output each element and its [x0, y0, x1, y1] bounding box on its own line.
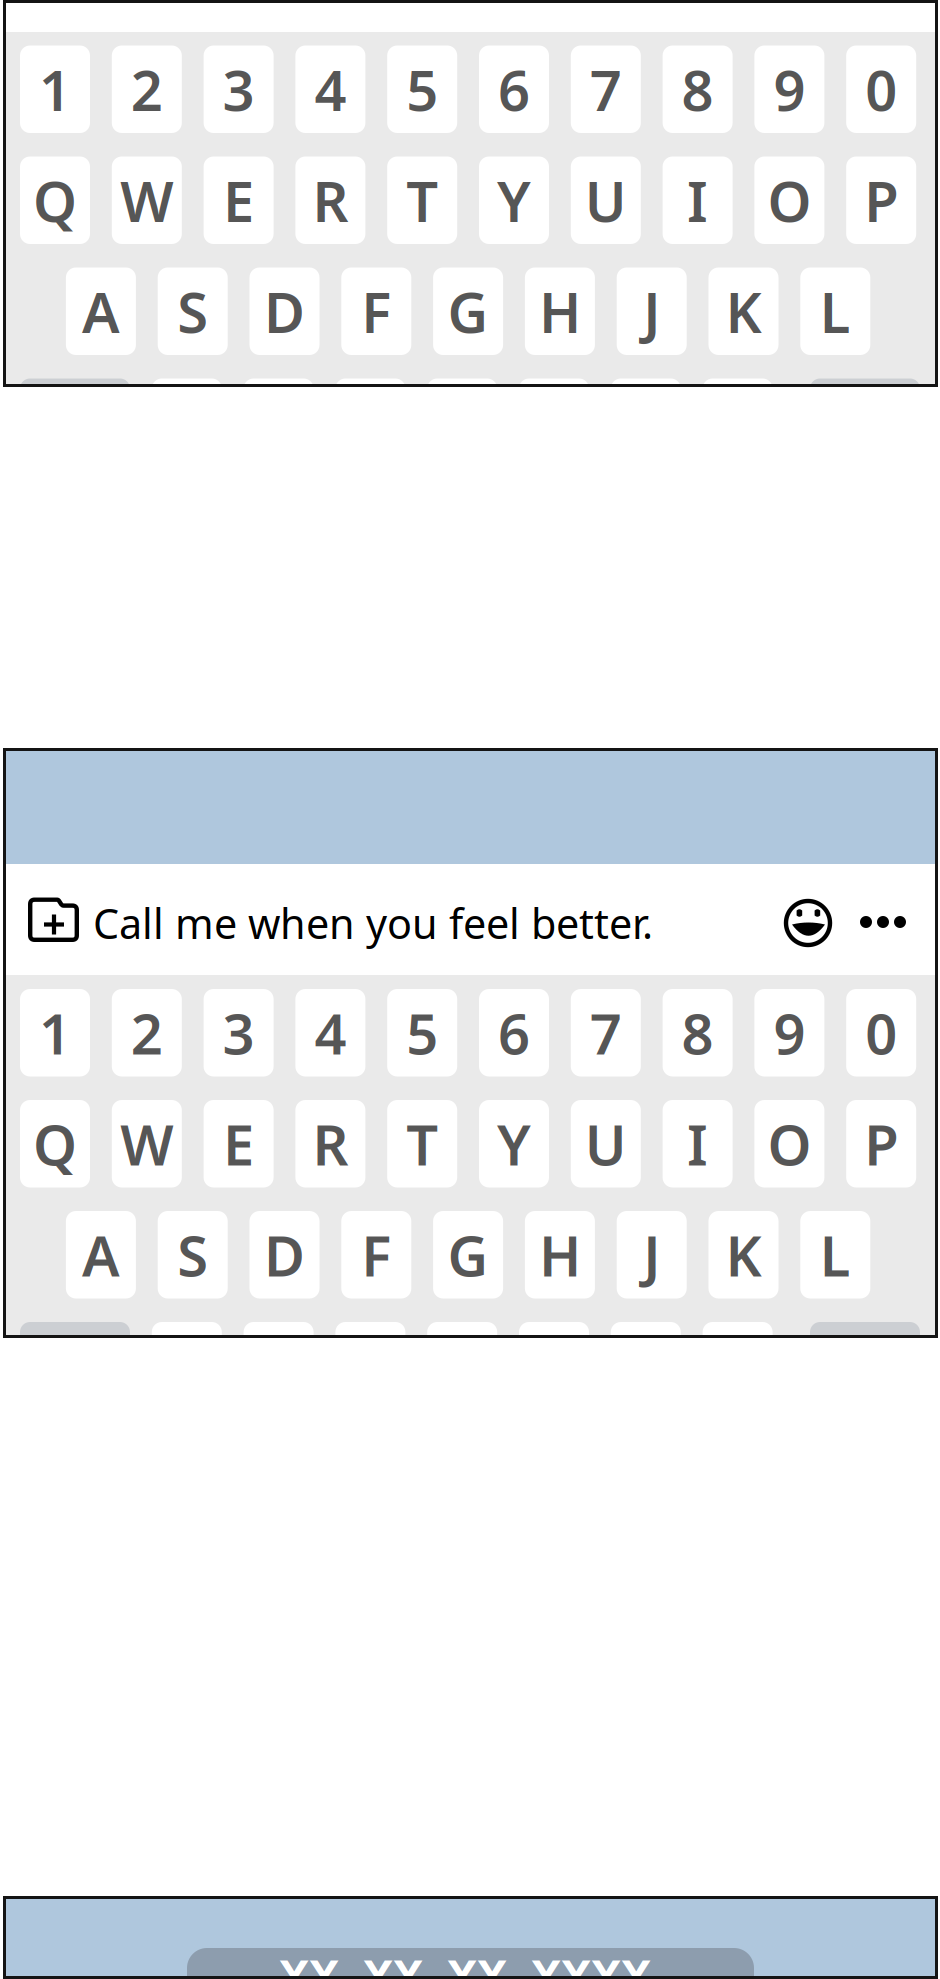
button[interactable]: O	[3, 32, 73, 119]
button[interactable]: R	[3, 32, 73, 119]
staticText: S	[177, 274, 208, 348]
button[interactable]: 6	[3, 975, 73, 1062]
button[interactable]: Q	[3, 975, 73, 1062]
button[interactable]: 1	[3, 975, 73, 1062]
staticText: H	[539, 1218, 581, 1292]
button[interactable]: W	[3, 32, 73, 119]
button[interactable]: U	[3, 32, 73, 119]
button[interactable]: P	[3, 975, 73, 1062]
staticText: 6	[498, 52, 530, 126]
button[interactable]: S	[3, 32, 73, 119]
button[interactable]: 6	[3, 32, 73, 119]
button[interactable]: W	[3, 975, 73, 1062]
button[interactable]: 7	[3, 975, 73, 1062]
staticText: P	[864, 1107, 898, 1181]
staticText: A	[82, 1218, 120, 1292]
button[interactable]: 8	[3, 975, 73, 1062]
staticText: P	[864, 163, 898, 237]
button[interactable]: U	[3, 975, 73, 1062]
button[interactable]: H	[3, 975, 73, 1062]
button[interactable]: G	[3, 975, 73, 1062]
staticText: E	[223, 163, 254, 237]
button[interactable]: O	[3, 975, 73, 1062]
button[interactable]: F	[3, 975, 73, 1062]
button[interactable]: 8	[3, 32, 73, 119]
button[interactable]: K	[3, 975, 73, 1062]
staticText: 3	[223, 996, 255, 1070]
button[interactable]: 9	[3, 975, 73, 1062]
staticText: U	[585, 163, 627, 237]
staticText: 7	[590, 996, 622, 1070]
button[interactable]: 3	[3, 975, 73, 1062]
staticText: 9	[773, 52, 805, 126]
button[interactable]: Emoji	[3, 748, 55, 800]
button[interactable]: L	[3, 975, 73, 1062]
button[interactable]: Add attachment	[3, 748, 55, 794]
staticText: D	[264, 1218, 305, 1292]
button[interactable]: J	[3, 975, 73, 1062]
button[interactable]: E	[3, 32, 73, 119]
button[interactable]: I	[3, 975, 73, 1062]
button[interactable]: 0	[3, 32, 73, 119]
button[interactable]: G	[3, 32, 73, 119]
staticText: Q	[33, 163, 77, 237]
staticText: E	[223, 1107, 254, 1181]
staticText: W	[120, 1107, 173, 1181]
button[interactable]: 2	[3, 32, 73, 119]
button[interactable]: 3	[3, 32, 73, 119]
staticText: F	[361, 274, 391, 348]
button[interactable]: F	[3, 32, 73, 119]
staticText: 4	[314, 996, 346, 1070]
staticText: T	[406, 1107, 438, 1181]
button[interactable]: Q	[3, 32, 73, 119]
button[interactable]: T	[3, 975, 73, 1062]
staticText: Y	[497, 1107, 531, 1181]
staticText: XX XX XX XXXX	[279, 1945, 651, 1979]
staticText: J	[643, 1218, 660, 1292]
button[interactable]: I	[3, 32, 73, 119]
button[interactable]: Y	[3, 32, 73, 119]
button[interactable]: 2	[3, 975, 73, 1062]
staticText: 1	[39, 52, 71, 126]
staticText: 5	[406, 996, 438, 1070]
button[interactable]: K	[3, 32, 73, 119]
staticText: 7	[590, 52, 622, 126]
button[interactable]: D	[3, 32, 73, 119]
staticText: Y	[497, 163, 531, 237]
button[interactable]: A	[3, 975, 73, 1062]
button[interactable]: R	[3, 975, 73, 1062]
button[interactable]: 4	[3, 975, 73, 1062]
staticText: K	[725, 274, 761, 348]
button[interactable]: 0	[3, 975, 73, 1062]
button[interactable]: 5	[3, 975, 73, 1062]
staticText: 0	[865, 52, 897, 126]
button[interactable]: Y	[3, 975, 73, 1062]
staticText: 9	[773, 996, 805, 1070]
button[interactable]: 4	[3, 32, 73, 119]
button[interactable]: P	[3, 32, 73, 119]
staticText: 1	[39, 996, 71, 1070]
button[interactable]: 1	[3, 32, 73, 119]
staticText: W	[120, 163, 173, 237]
staticText: 2	[131, 52, 163, 126]
button[interactable]: E	[3, 975, 73, 1062]
button[interactable]: J	[3, 32, 73, 119]
staticText: J	[643, 274, 660, 348]
staticText: Q	[33, 1107, 77, 1181]
button[interactable]: More options	[3, 748, 49, 762]
staticText: 4	[314, 52, 346, 126]
button[interactable]: T	[3, 32, 73, 119]
staticText: A	[82, 274, 120, 348]
button[interactable]: H	[3, 32, 73, 119]
button[interactable]: S	[3, 975, 73, 1062]
staticText: S	[177, 1218, 208, 1292]
staticText: K	[725, 1218, 761, 1292]
button[interactable]: 7	[3, 32, 73, 119]
staticText: R	[312, 163, 348, 237]
button[interactable]: A	[3, 32, 73, 119]
button[interactable]: 9	[3, 32, 73, 119]
button[interactable]: 5	[3, 32, 73, 119]
button[interactable]: L	[3, 32, 73, 119]
staticText: I	[687, 1107, 708, 1181]
button[interactable]: D	[3, 975, 73, 1062]
